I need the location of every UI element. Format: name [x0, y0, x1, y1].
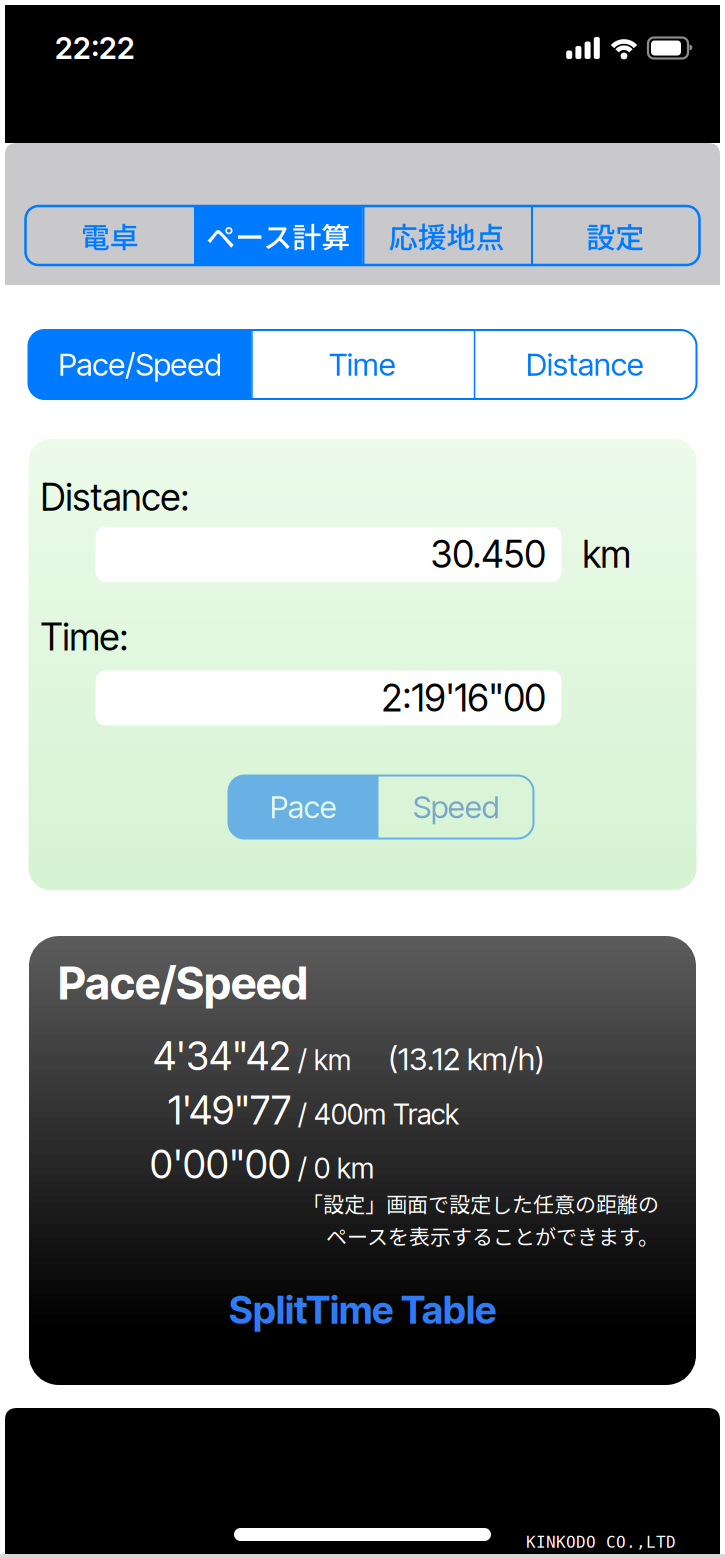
staticText: ペースを表示することができます。 [326, 1220, 659, 1251]
button[interactable]: 2:19'16"00 [95, 670, 561, 725]
staticText: 4'34"42 [153, 1032, 291, 1080]
staticText: / 0 km [298, 1151, 374, 1185]
staticText: Distance [526, 346, 644, 383]
button[interactable]: 電卓 [25, 206, 194, 265]
button[interactable]: Distance [474, 330, 696, 399]
staticText: Pace [270, 788, 337, 826]
button[interactable]: Speed [378, 775, 533, 838]
staticText: 応援地点 [389, 214, 505, 256]
staticText: / 400m Track [298, 1097, 459, 1131]
staticText: 0'00"00 [150, 1141, 291, 1188]
staticText: 22:22 [55, 30, 135, 66]
staticText: (13.12 km/h) [388, 1040, 545, 1078]
staticText: 1'49"77 [168, 1087, 291, 1134]
button[interactable]: ペース計算 [194, 206, 362, 265]
staticText: KINKODO CO.,LTD [526, 1533, 676, 1552]
staticText: Pace/Speed [58, 956, 308, 1010]
staticText: Pace/Speed [58, 346, 221, 383]
staticText: 「設定」画面で設定した任意の距離の [302, 1188, 659, 1218]
staticText: Time [329, 346, 396, 383]
staticText: 電卓 [81, 214, 139, 256]
staticText: 30.450 [430, 532, 545, 577]
staticText: 2:19'16"00 [381, 676, 545, 720]
button[interactable]: 設定 [531, 206, 699, 265]
staticText: ペース計算 [206, 214, 350, 256]
button[interactable]: SplitTime Table [229, 1287, 496, 1333]
button[interactable]: Time [251, 330, 474, 399]
button[interactable]: 応援地点 [362, 206, 531, 265]
button[interactable]: Pace [228, 775, 378, 838]
staticText: / km [298, 1043, 351, 1077]
staticText: Distance: [40, 475, 189, 520]
staticText: km [582, 532, 630, 577]
staticText: 設定 [586, 214, 644, 256]
staticText: Time: [40, 615, 128, 660]
button[interactable]: Pace/Speed [29, 330, 251, 399]
staticText: Speed [413, 788, 499, 826]
button[interactable]: 30.450 [95, 527, 561, 582]
staticText: SplitTime Table [229, 1287, 496, 1333]
